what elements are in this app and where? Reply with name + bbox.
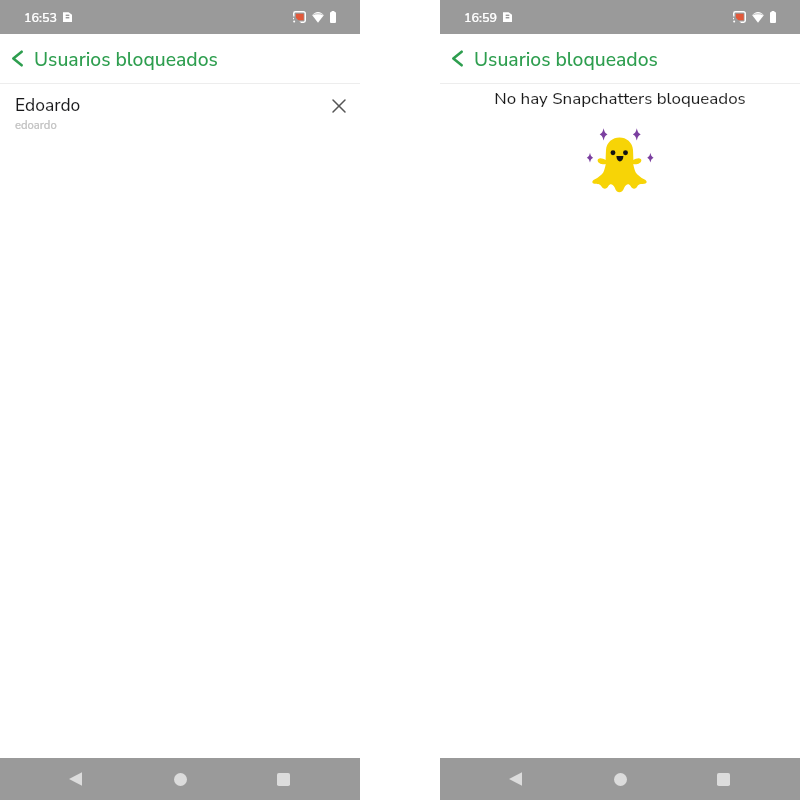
staticText: edoardo xyxy=(15,118,57,133)
button[interactable]: Home xyxy=(601,758,640,800)
staticText: No hay Snapchatters bloqueados xyxy=(494,87,746,110)
button[interactable]: Recents xyxy=(704,758,743,800)
staticText: 16:59 xyxy=(464,9,497,26)
staticText: 16:53 xyxy=(24,9,57,26)
button[interactable]: Edoardo xyxy=(0,84,360,134)
button[interactable]: Recents xyxy=(264,758,303,800)
button[interactable]: Home xyxy=(161,758,200,800)
button[interactable]: Back xyxy=(0,34,34,83)
button[interactable]: Back xyxy=(496,758,535,800)
staticText: Edoardo xyxy=(15,94,81,118)
button[interactable]: Back xyxy=(440,34,474,83)
button[interactable]: Back xyxy=(0,34,360,83)
button[interactable]: Back xyxy=(56,758,95,800)
button[interactable]: Back xyxy=(440,34,800,83)
button[interactable]: Unblock xyxy=(330,97,348,115)
staticText: Usuarios bloqueados xyxy=(34,46,218,72)
staticText: Usuarios bloqueados xyxy=(474,46,658,72)
